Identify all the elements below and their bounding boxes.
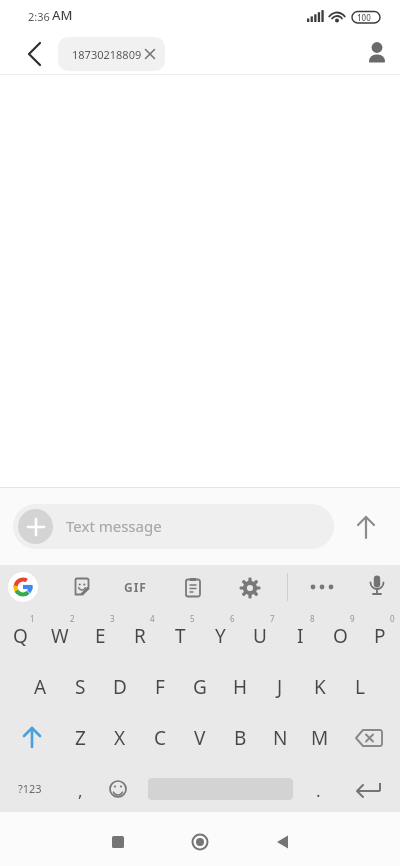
button[interactable] — [8, 572, 38, 602]
button[interactable]: B — [220, 713, 260, 762]
button[interactable]: C — [140, 713, 180, 762]
button[interactable]: K — [300, 662, 340, 711]
button[interactable] — [14, 38, 50, 70]
staticText: ?123 — [18, 781, 42, 796]
staticText: 100 — [357, 12, 371, 23]
staticText: U — [253, 623, 267, 649]
staticText: , — [78, 779, 83, 802]
button[interactable]: L — [340, 662, 380, 711]
staticText: Z — [75, 725, 86, 751]
button[interactable]: 18730218809 — [58, 37, 165, 71]
button[interactable]: W — [40, 611, 80, 661]
button[interactable]: Z — [60, 713, 100, 762]
staticText: 1 — [30, 613, 35, 624]
staticText: T — [175, 623, 186, 649]
button[interactable]: E — [80, 611, 120, 661]
button[interactable]: V — [180, 713, 220, 762]
staticText: K — [314, 674, 326, 700]
button[interactable] — [100, 824, 136, 860]
staticText: E — [95, 623, 106, 649]
staticText: J — [277, 674, 283, 700]
staticText: V — [194, 725, 206, 751]
button[interactable]: F — [140, 662, 180, 711]
button[interactable] — [68, 574, 96, 602]
button[interactable]: . — [300, 766, 336, 815]
staticText: 18730218809 — [72, 47, 142, 62]
button[interactable]: H — [220, 662, 260, 711]
button[interactable]: S — [60, 662, 100, 711]
staticText: 3 — [110, 613, 115, 624]
staticText: . — [316, 779, 321, 802]
button[interactable]: A — [20, 662, 60, 711]
button[interactable]: ?123 — [8, 764, 52, 813]
staticText: 6 — [230, 613, 235, 624]
staticText: 9 — [350, 613, 355, 624]
button[interactable] — [236, 574, 264, 602]
button[interactable]: G — [180, 662, 220, 711]
staticText: S — [75, 674, 86, 700]
staticText: C — [154, 725, 167, 751]
staticText: 5 — [190, 613, 195, 624]
staticText: 2 — [70, 613, 75, 624]
staticText: 4 — [150, 613, 155, 624]
staticText: 7 — [270, 613, 275, 624]
button[interactable]: N — [260, 713, 300, 762]
button[interactable] — [264, 824, 300, 860]
staticText: D — [113, 674, 127, 700]
staticText: R — [134, 623, 146, 649]
button[interactable]: X — [100, 713, 140, 762]
staticText: I — [297, 623, 304, 649]
button[interactable]: P — [360, 611, 400, 661]
staticText: W — [51, 623, 69, 649]
button[interactable]: R — [120, 611, 160, 661]
button[interactable]: Q — [0, 611, 40, 661]
button[interactable] — [182, 824, 218, 860]
staticText: H — [233, 674, 248, 700]
staticText: L — [355, 674, 365, 700]
button[interactable]: Y — [200, 611, 240, 661]
staticText: P — [374, 623, 386, 649]
button[interactable]: T — [160, 611, 200, 661]
staticText: B — [234, 725, 247, 751]
button[interactable] — [363, 572, 391, 600]
button[interactable]: O — [320, 611, 360, 661]
staticText: M — [311, 725, 329, 751]
button[interactable]: I — [280, 611, 320, 661]
staticText: 2:36 — [28, 9, 50, 24]
button[interactable] — [360, 36, 394, 70]
staticText: Y — [215, 623, 226, 649]
button[interactable]: D — [100, 662, 140, 711]
staticText: N — [273, 725, 288, 751]
button[interactable]: , — [62, 766, 98, 815]
button[interactable] — [304, 574, 340, 600]
staticText: O — [333, 623, 348, 649]
button[interactable]: GIF — [116, 574, 154, 600]
staticText: X — [114, 725, 126, 751]
staticText: G — [193, 674, 207, 700]
button[interactable] — [100, 764, 136, 813]
staticText: 0 — [390, 613, 395, 624]
staticText: Text message — [66, 516, 162, 536]
staticText: 8 — [310, 613, 315, 624]
staticText: GIF — [124, 579, 147, 595]
button[interactable] — [344, 764, 396, 813]
button[interactable] — [4, 713, 56, 762]
button[interactable]: J — [260, 662, 300, 711]
staticText: Q — [13, 623, 28, 649]
staticText: F — [155, 674, 165, 700]
staticText: A — [34, 674, 47, 700]
button[interactable] — [179, 574, 207, 602]
button[interactable]: M — [300, 713, 340, 762]
staticText: AM — [52, 6, 73, 24]
button[interactable] — [348, 510, 384, 546]
button[interactable]: Text message — [13, 504, 334, 549]
button[interactable] — [344, 713, 396, 762]
button[interactable]: U — [240, 611, 280, 661]
